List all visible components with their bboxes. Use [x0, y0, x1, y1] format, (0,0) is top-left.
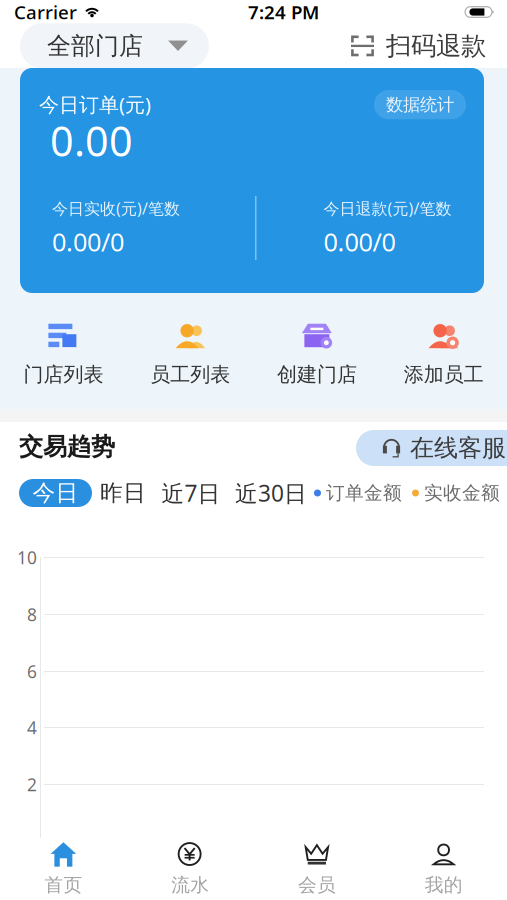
button[interactable]: 我的	[380, 838, 507, 900]
staticText: 今日订单(元)	[39, 91, 151, 118]
staticText: 订单金额	[326, 481, 402, 504]
staticText: 今日退款(元)/笔数	[323, 198, 451, 219]
staticText: 4	[27, 716, 37, 739]
staticText: 0.00/0	[323, 225, 395, 258]
staticText: 我的	[425, 873, 463, 896]
button[interactable]: 数据统计	[374, 90, 466, 119]
staticText: 6	[27, 660, 37, 683]
staticText: 门店列表	[23, 362, 103, 387]
button[interactable]: 会员	[253, 838, 380, 900]
button[interactable]: 近7日	[154, 479, 228, 507]
staticText: 扫码退款	[386, 30, 486, 61]
staticText: 交易趋势	[19, 432, 115, 461]
staticText: 7:24 PM	[248, 0, 319, 24]
staticText: 0.00/0	[52, 225, 124, 258]
button[interactable]: 添加员工	[380, 321, 507, 387]
staticText: 今日	[32, 479, 78, 507]
staticText: 2	[27, 773, 37, 796]
staticText: 添加员工	[404, 362, 484, 387]
staticText: 流水	[171, 873, 209, 896]
button[interactable]: 门店列表	[0, 321, 127, 387]
staticText: 近7日	[161, 478, 220, 508]
button[interactable]: 创建门店	[253, 321, 380, 387]
staticText: 员工列表	[150, 362, 230, 387]
button[interactable]: 首页	[0, 838, 127, 900]
button[interactable]: 近30日	[228, 479, 314, 507]
staticText: Carrier	[14, 0, 77, 24]
staticText: 10	[17, 546, 37, 569]
staticText: 在线客服	[410, 433, 506, 463]
staticText: 今日实收(元)/笔数	[52, 198, 180, 219]
button[interactable]: 扫码退款	[351, 26, 507, 65]
staticText: 近30日	[235, 478, 307, 508]
staticText: 首页	[44, 873, 82, 896]
staticText: 实收金额	[424, 481, 500, 504]
button[interactable]: 在线客服	[356, 430, 507, 466]
button[interactable]: 昨日	[92, 479, 154, 507]
button[interactable]: 全部门店	[20, 23, 209, 69]
staticText: 数据统计	[386, 94, 454, 115]
staticText: 0.00	[50, 113, 133, 168]
staticText: 昨日	[100, 479, 146, 507]
staticText: 全部门店	[47, 31, 143, 61]
button[interactable]: 流水	[127, 838, 254, 900]
staticText: 会员	[298, 873, 336, 896]
button[interactable]: 今日	[19, 479, 92, 507]
staticText: 8	[27, 603, 37, 626]
staticText: 创建门店	[277, 362, 357, 387]
button[interactable]: 员工列表	[127, 321, 254, 387]
